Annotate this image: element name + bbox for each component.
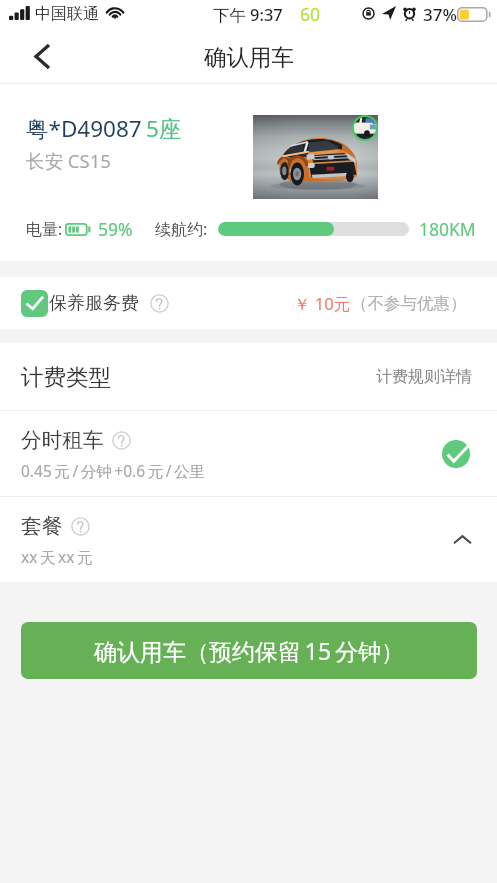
button[interactable]: 保养服务费 <box>21 290 169 317</box>
button[interactable]: 计费规则详情 <box>376 367 472 387</box>
other: Collapse <box>454 535 471 545</box>
staticText: 59% <box>98 217 133 241</box>
button[interactable]: 分时租车 <box>0 411 497 496</box>
button[interactable]: 套餐 <box>0 497 497 582</box>
staticText: 确认用车（预约保留 15 分钟） <box>94 635 404 666</box>
staticText: 保养服务费 <box>49 292 139 315</box>
staticText: ￥ 10元 <box>294 292 351 315</box>
button[interactable]: Back <box>11 30 73 83</box>
staticText: 套餐 <box>21 513 63 539</box>
staticText: 长安 CS15 <box>26 148 111 173</box>
staticText: 计费规则详情 <box>376 367 472 387</box>
staticText: 37% <box>423 3 457 26</box>
staticText: 续航约: <box>155 218 208 240</box>
staticText: 下午 9:37 <box>213 3 283 25</box>
staticText: （不参与优惠） <box>351 293 467 314</box>
other: Selected <box>442 440 470 468</box>
staticText: 180KM <box>419 217 476 241</box>
staticText: xx 天 xx 元 <box>21 546 93 567</box>
staticText: 计费类型 <box>21 363 111 391</box>
staticText: 分时租车 <box>21 427 104 453</box>
staticText: 粤*D49087 <box>26 113 142 144</box>
staticText: 5座 <box>146 113 182 144</box>
staticText: 电量: <box>26 218 63 240</box>
staticText: 0.45 元 / 分钟 +0.6 元 / 公里 <box>21 460 206 481</box>
staticText: 中国联通 <box>35 4 99 24</box>
button[interactable]: 确认用车（预约保留 15 分钟） <box>21 622 477 679</box>
staticText: 60 <box>300 2 321 26</box>
staticText: 确认用车 <box>204 43 294 71</box>
